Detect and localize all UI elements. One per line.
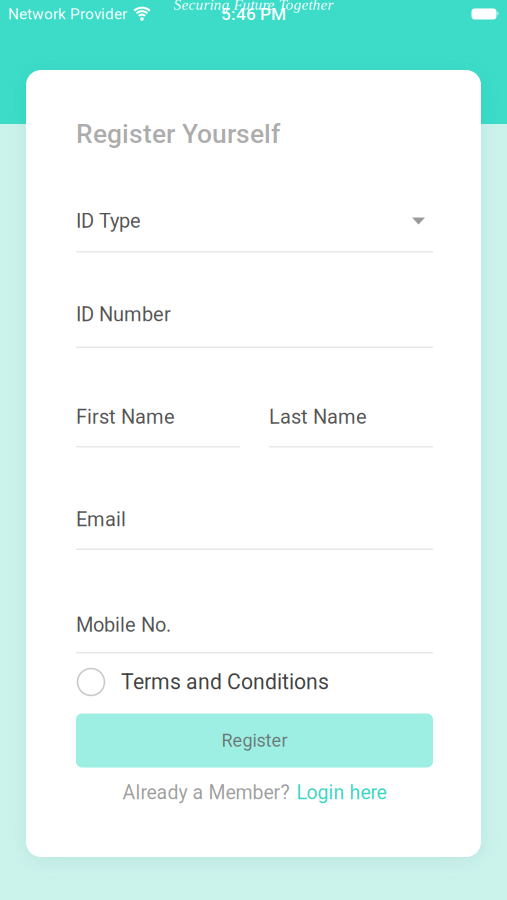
staticText: Already a Member? xyxy=(122,781,289,804)
staticText: ID Number xyxy=(76,303,171,326)
staticText: Register xyxy=(221,730,287,751)
staticText: Network Provider xyxy=(8,5,127,23)
staticText: Login here xyxy=(296,781,386,804)
staticText: Securing Future Together xyxy=(173,0,333,13)
staticText: Mobile No. xyxy=(76,613,171,637)
staticText: Last Name xyxy=(269,405,367,429)
staticText: Terms and Conditions xyxy=(121,670,329,694)
staticText: First Name xyxy=(76,405,175,429)
button[interactable]: Login here xyxy=(296,781,386,804)
staticText: ID Type xyxy=(76,209,141,233)
staticText: Email xyxy=(76,508,126,531)
button[interactable]: ID Type xyxy=(76,209,433,233)
staticText: 5:46 PM xyxy=(221,4,286,24)
button[interactable]: Register xyxy=(76,713,433,767)
button[interactable]: Terms and Conditions xyxy=(76,668,329,695)
staticText: Register Yourself xyxy=(76,118,280,149)
